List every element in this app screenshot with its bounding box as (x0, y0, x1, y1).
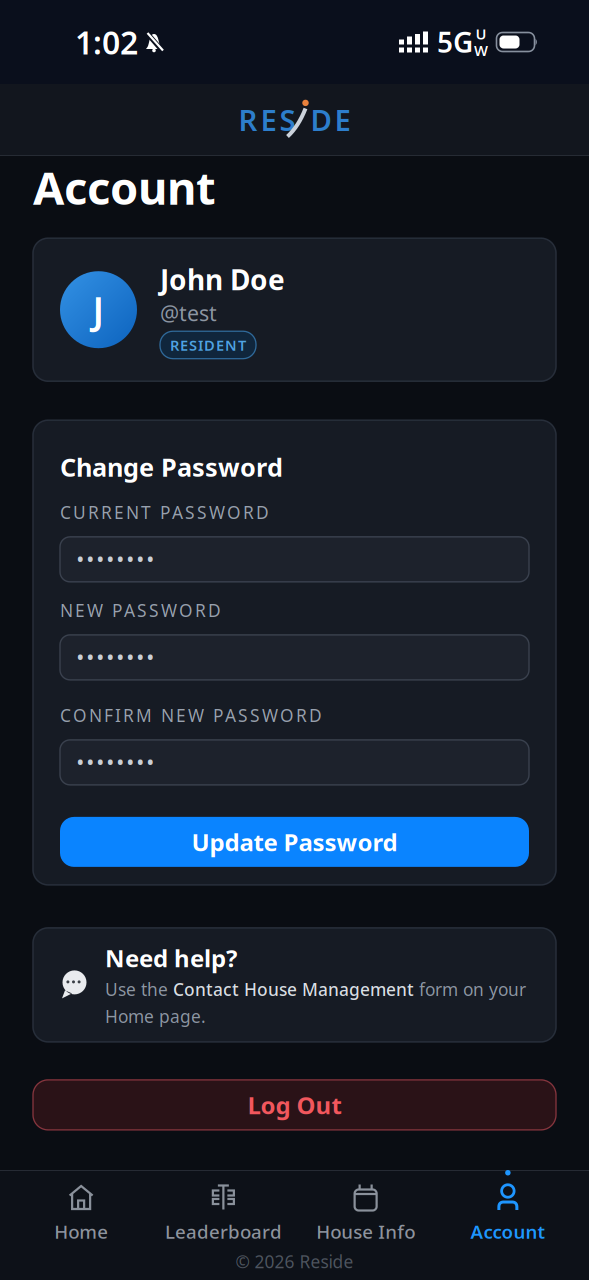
staticText: Use the (105, 978, 173, 1001)
staticText: House Info (316, 1219, 415, 1244)
button[interactable]: Update Password (60, 817, 529, 867)
staticText: U (475, 24, 486, 43)
staticText: Update Password (191, 826, 397, 858)
staticText: • • • • • • • • (77, 751, 154, 774)
button[interactable]: Leaderboard (152, 1171, 294, 1244)
staticText: R E S (238, 100, 295, 139)
staticText: Home page. (105, 1005, 206, 1028)
staticText: R E S I D E N T (170, 335, 246, 355)
staticText: J (92, 285, 104, 334)
staticText: N E W P A S S W O R D (60, 599, 221, 622)
staticText: Need help? (105, 942, 237, 974)
staticText: W (474, 40, 488, 60)
staticText: • • • • • • • • (77, 646, 154, 669)
staticText: Account (33, 157, 216, 217)
staticText: • • • • • • • • (77, 548, 154, 571)
staticText: Home (54, 1219, 108, 1244)
staticText: Change Password (60, 450, 283, 484)
staticText: 1:02 (75, 21, 138, 63)
staticText: © 2026 Reside (235, 1250, 353, 1273)
staticText: C O N F I R M N E W P A S S W O R D (60, 704, 322, 727)
staticText: Account (470, 1219, 545, 1244)
button[interactable]: Home (10, 1171, 152, 1244)
button[interactable]: House Info (294, 1171, 437, 1244)
staticText: D E (310, 100, 350, 139)
staticText: Log Out (247, 1089, 341, 1121)
staticText: form on your (414, 978, 526, 1001)
button[interactable]: Log Out (33, 1080, 556, 1130)
staticText: Contact House Management (173, 978, 414, 1001)
button[interactable]: Account (437, 1171, 579, 1244)
staticText: John Doe (160, 261, 285, 298)
staticText: C U R R E N T P A S S W O R D (60, 501, 269, 524)
staticText: Leaderboard (165, 1219, 282, 1244)
staticText: @test (160, 299, 217, 327)
staticText: 5G (437, 23, 473, 61)
